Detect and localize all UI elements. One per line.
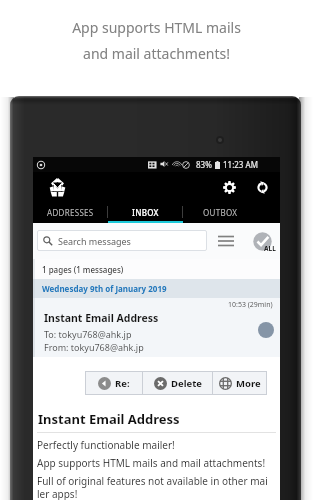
button[interactable]: App logo — [44, 174, 70, 200]
staticText: Re: — [115, 377, 130, 390]
staticText: 11:23 AM — [223, 159, 258, 170]
staticText: Instant Email Address — [38, 410, 180, 428]
staticText: 1 pages (1 messages) — [42, 264, 124, 275]
staticText: More — [236, 377, 261, 390]
staticText: INBOX — [132, 207, 159, 218]
staticText: Delete — [171, 377, 202, 390]
staticText: App supports HTML mails — [72, 18, 241, 37]
button[interactable]: More — [213, 371, 267, 395]
staticText: 10:53 (29min) — [228, 300, 273, 310]
staticText: To: tokyu768@ahk.jp — [44, 328, 132, 340]
button[interactable]: Delete — [143, 371, 212, 395]
button[interactable]: Select all — [252, 231, 273, 252]
staticText: Instant Email Address — [44, 311, 159, 325]
button[interactable]: Settings — [218, 176, 240, 198]
staticText: 83% — [196, 159, 212, 170]
staticText: and mail attachments! — [83, 44, 230, 63]
button[interactable]: Search messages — [37, 230, 207, 251]
button[interactable]: INBOX — [108, 201, 183, 223]
staticText: Search messages — [58, 235, 131, 247]
staticText: From: tokyu768@ahk.jp — [44, 341, 144, 353]
button[interactable]: 10:53 (29min) — [33, 298, 280, 357]
staticText: App supports HTML mails and mail attachm… — [37, 456, 266, 470]
button[interactable]: ADDRESSES — [33, 201, 108, 223]
staticText: ler apps! — [37, 487, 78, 500]
button[interactable]: List options — [215, 229, 237, 253]
button[interactable]: Re: — [85, 371, 142, 395]
staticText: Full of original features not available … — [37, 474, 268, 488]
button[interactable]: OUTBOX — [183, 201, 258, 223]
staticText: ADDRESSES — [47, 207, 94, 218]
staticText: Wednesday 9th of January 2019 — [42, 283, 167, 294]
button[interactable]: Refresh — [251, 176, 273, 198]
staticText: ALL — [264, 244, 276, 253]
staticText: Perfectly functionable mailer! — [37, 438, 175, 452]
staticText: OUTBOX — [203, 207, 238, 218]
